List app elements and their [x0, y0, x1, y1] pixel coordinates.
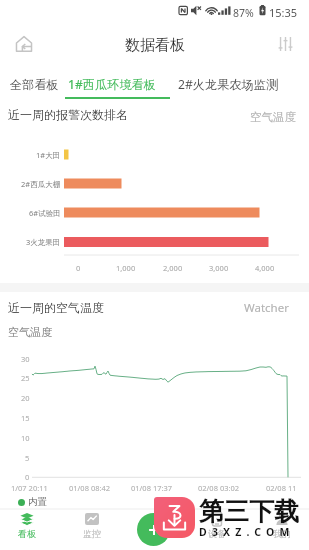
staticText: 0 — [25, 472, 30, 482]
staticText: 02/08 11 — [266, 483, 297, 493]
staticText: 3,000 — [209, 263, 229, 273]
staticText: 15:35 — [269, 5, 298, 20]
button[interactable]: 设备 — [193, 512, 241, 548]
button[interactable]: Filter — [269, 28, 301, 60]
staticText: 设备 — [208, 528, 226, 539]
button[interactable]: 看板 — [3, 512, 51, 548]
staticText: D3XZ.COM — [199, 525, 295, 539]
staticText: 6#试验田 — [29, 208, 61, 218]
staticText: 01/08 17:37 — [131, 483, 173, 493]
staticText: 空气温度 — [250, 110, 296, 124]
staticText: 内置 — [28, 496, 47, 508]
staticText: 1/07 20:11 — [11, 483, 48, 493]
staticText: 02/08 03:02 — [198, 483, 240, 493]
staticText: 10 — [21, 433, 30, 443]
staticText: Watcher — [244, 300, 289, 316]
staticText: 数据看板 — [125, 36, 185, 55]
staticText: 1,000 — [116, 263, 136, 273]
staticText: 近一周的报警次数排名 — [8, 107, 128, 122]
button[interactable]: 全部看板 — [10, 73, 59, 95]
button[interactable]: 监控 — [68, 512, 116, 548]
staticText: 30 — [21, 354, 30, 364]
staticText: 监控 — [83, 528, 101, 539]
button[interactable]: 1#西瓜环境看板 — [68, 73, 156, 95]
staticText: 空气温度 — [8, 325, 52, 339]
staticText: 看板 — [18, 528, 36, 539]
staticText: 20 — [21, 393, 30, 403]
staticText: 3火龙果田 — [26, 237, 61, 247]
staticText: 我的 — [273, 528, 291, 539]
staticText: 2,000 — [163, 263, 183, 273]
staticText: 01/08 08:42 — [69, 483, 111, 493]
staticText: 全部看板 — [10, 77, 59, 92]
staticText: 5 — [25, 453, 30, 463]
staticText: 0 — [76, 263, 81, 273]
staticText: 4,000 — [255, 263, 275, 273]
staticText: 87% — [233, 6, 254, 20]
staticText: 2#火龙果农场监测 — [178, 76, 279, 93]
staticText: 近一周的空气温度 — [8, 300, 104, 315]
staticText: 1#西瓜环境看板 — [68, 76, 156, 93]
staticText: 25 — [21, 373, 30, 383]
button[interactable]: Add — [137, 513, 170, 546]
staticText: 2#西瓜大棚 — [21, 179, 61, 189]
button[interactable]: 2#火龙果农场监测 — [178, 73, 279, 95]
staticText: 15 — [21, 413, 30, 423]
button[interactable]: Home — [8, 28, 40, 60]
staticText: 1#大田 — [36, 150, 61, 160]
button[interactable]: 我的 — [258, 512, 306, 548]
staticText: 第三下载 — [199, 496, 299, 527]
